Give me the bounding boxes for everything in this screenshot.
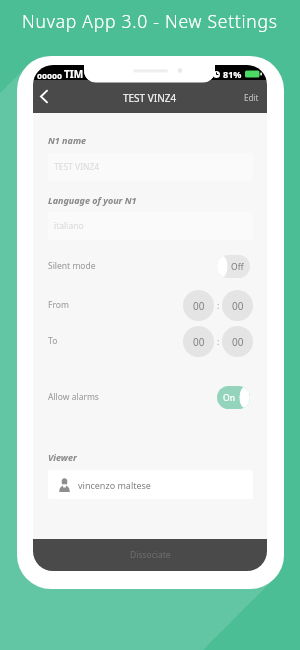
button[interactable]: TEST VINZ4: [48, 153, 253, 181]
button[interactable]: Dissociate: [33, 539, 267, 571]
button[interactable]: Back: [33, 80, 55, 113]
staticText: Language of your N1: [48, 194, 137, 206]
button[interactable]: Off: [217, 255, 250, 278]
button[interactable]: Edit: [244, 80, 259, 113]
staticText: On: [223, 392, 235, 404]
button[interactable]: On: [217, 386, 250, 409]
button[interactable]: 00: [183, 290, 214, 321]
staticText: Edit: [244, 92, 259, 103]
button[interactable]: 00: [222, 290, 253, 321]
staticText: From: [48, 299, 69, 311]
staticText: italiano: [54, 220, 84, 232]
staticText: To: [48, 335, 58, 347]
staticText: :: [217, 299, 220, 311]
staticText: Viewer: [48, 451, 77, 463]
staticText: Nuvap App 3.0 - New Settings: [22, 9, 278, 33]
button[interactable]: vincenzo maltese: [48, 470, 253, 499]
staticText: Dissociate: [130, 549, 171, 561]
staticText: TEST VINZ4: [123, 91, 177, 105]
staticText: TEST VINZ4: [54, 161, 100, 173]
staticText: vincenzo maltese: [78, 479, 151, 491]
staticText: ooooo: [37, 70, 62, 81]
staticText: 00: [193, 335, 205, 349]
button[interactable]: 00: [183, 326, 214, 357]
staticText: 00: [232, 299, 244, 313]
staticText: N1 name: [48, 134, 87, 146]
button[interactable]: 00: [222, 326, 253, 357]
staticText: Off: [231, 261, 244, 273]
staticText: Silent mode: [48, 260, 96, 272]
staticText: Allow alarms: [48, 391, 99, 403]
staticText: 00: [193, 299, 205, 313]
staticText: :: [217, 335, 220, 347]
staticText: 00: [232, 335, 244, 349]
staticText: 81%: [223, 68, 242, 80]
staticText: TIM: [64, 67, 84, 81]
